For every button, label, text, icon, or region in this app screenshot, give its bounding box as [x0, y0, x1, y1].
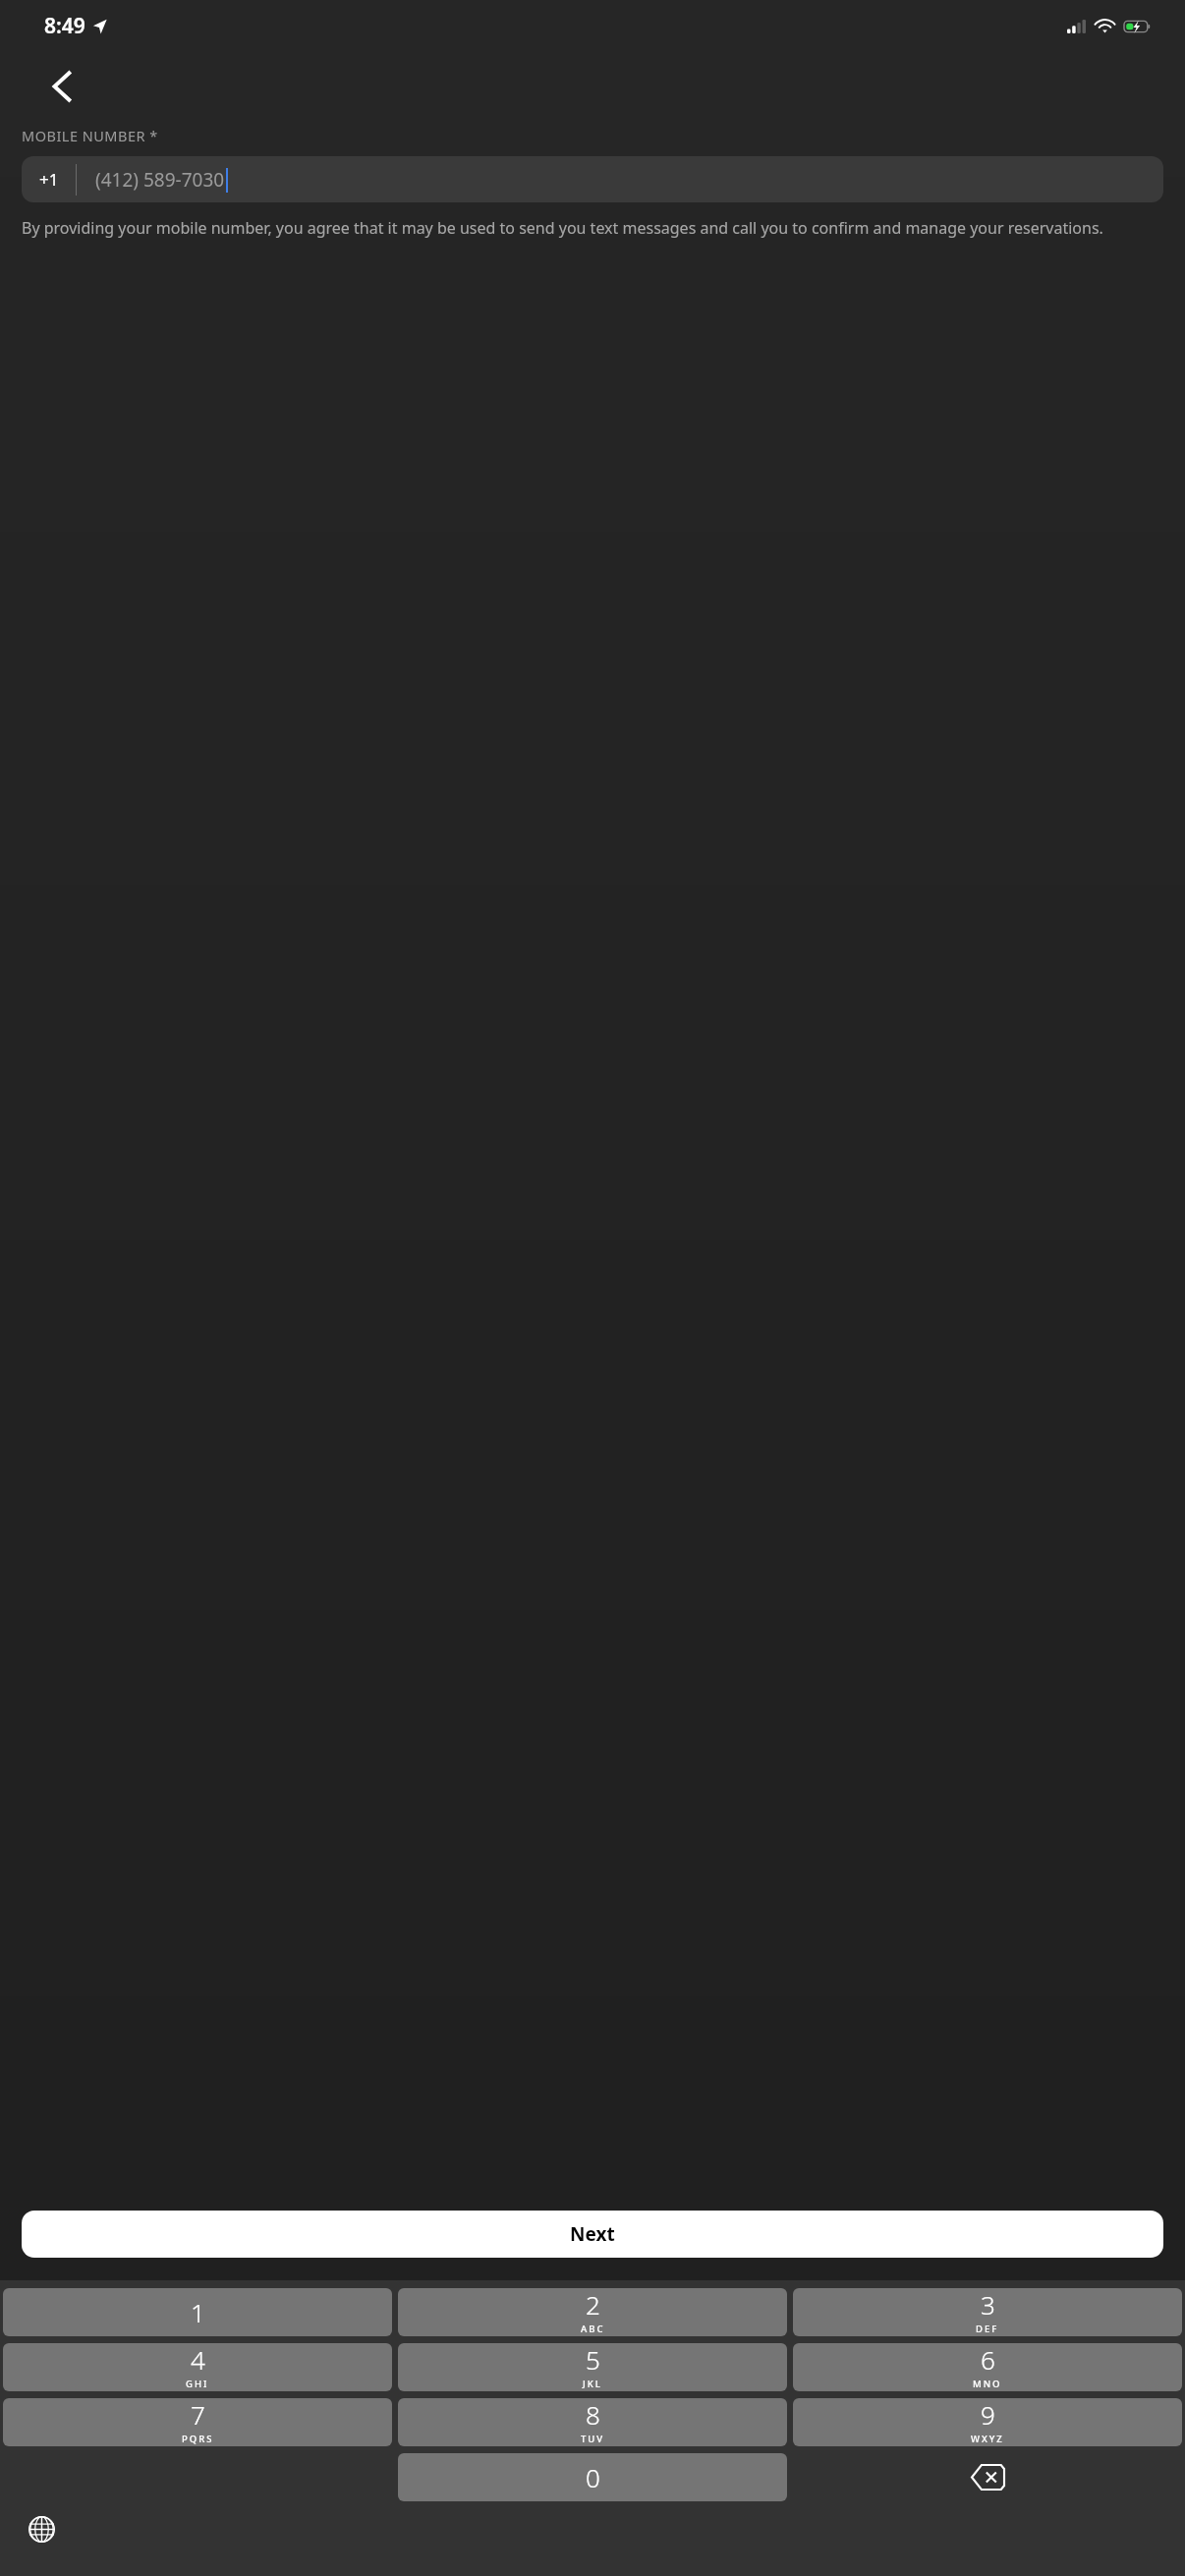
button[interactable]: 7 [3, 2398, 392, 2446]
staticText: DEF [976, 2323, 999, 2335]
staticText: Next [570, 2221, 615, 2247]
staticText: WXYZ [971, 2433, 1004, 2445]
button[interactable]: 8 [398, 2398, 787, 2446]
staticText: JKL [583, 2378, 602, 2390]
staticText: PQRS [182, 2433, 214, 2445]
staticText: (412) 589-7030 [95, 167, 225, 193]
staticText: 2 [586, 2288, 600, 2322]
button[interactable]: 3 [793, 2288, 1182, 2336]
staticText: 7 [191, 2398, 205, 2432]
staticText: 9 [981, 2398, 995, 2432]
button[interactable]: 4 [3, 2343, 392, 2391]
button[interactable]: Change keyboard language [18, 2505, 65, 2552]
staticText: MNO [973, 2378, 1002, 2390]
staticText: MOBILE NUMBER * [22, 126, 158, 145]
button[interactable]: Backspace [793, 2453, 1182, 2501]
staticText: 4 [191, 2343, 205, 2377]
staticText: 5 [586, 2343, 600, 2377]
button[interactable]: 0 [398, 2453, 787, 2501]
staticText: 1 [191, 2295, 205, 2329]
staticText: ABC [581, 2323, 605, 2335]
button[interactable]: Back [37, 60, 90, 113]
staticText: GHI [186, 2378, 209, 2390]
staticText: 6 [981, 2343, 995, 2377]
button[interactable]: 6 [793, 2343, 1182, 2391]
staticText: 3 [981, 2288, 995, 2322]
staticText: 0 [586, 2460, 600, 2494]
staticText: +1 [39, 168, 59, 191]
button[interactable]: +1 [22, 156, 1163, 202]
staticText: By providing your mobile number, you agr… [22, 217, 1163, 239]
button[interactable]: 2 [398, 2288, 787, 2336]
button[interactable]: 5 [398, 2343, 787, 2391]
staticText: TUV [581, 2433, 605, 2445]
staticText: 8:49 [44, 12, 85, 40]
button[interactable]: 1 [3, 2288, 392, 2336]
staticText: 8 [586, 2398, 600, 2432]
button[interactable]: Next [22, 2211, 1163, 2258]
button[interactable]: 9 [793, 2398, 1182, 2446]
